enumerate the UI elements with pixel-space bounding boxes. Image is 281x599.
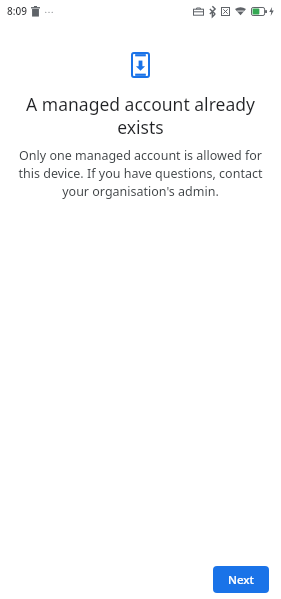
staticText: Only one managed account is allowed for … xyxy=(14,147,267,200)
staticText: 8:09 xyxy=(7,4,27,18)
button[interactable]: Next xyxy=(213,566,269,593)
staticText: A managed account already exists xyxy=(20,92,261,139)
other: Managed device xyxy=(131,52,150,78)
staticText: Next xyxy=(228,572,254,588)
